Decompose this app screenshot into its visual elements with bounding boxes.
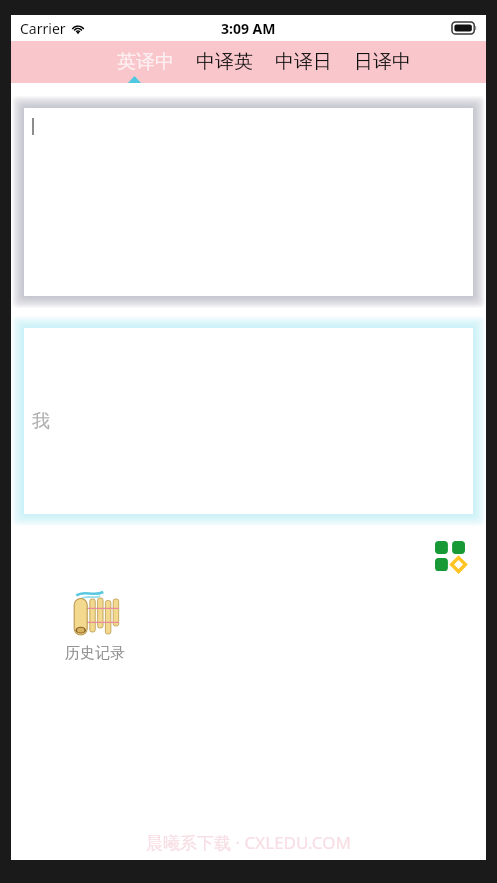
button[interactable]: 中译英 bbox=[185, 41, 264, 83]
staticText: 晨曦系下载 · CXLEDU.COM bbox=[146, 831, 351, 854]
staticText: 3:09 AM bbox=[221, 19, 276, 38]
staticText: 日译中 bbox=[354, 50, 411, 74]
staticText: 英译中 bbox=[117, 50, 174, 74]
staticText: 历史记录 bbox=[65, 644, 125, 663]
button[interactable]: 中译日 bbox=[264, 41, 343, 83]
staticText: 中译英 bbox=[196, 50, 253, 74]
staticText: 我 bbox=[32, 410, 50, 433]
button[interactable]: 英译中 bbox=[106, 41, 185, 83]
button[interactable]: 历史记录 bbox=[51, 590, 139, 663]
button[interactable]: 日译中 bbox=[343, 41, 422, 83]
staticText: 中译日 bbox=[275, 50, 332, 74]
staticText: Carrier bbox=[20, 19, 66, 38]
button[interactable]: Apps bbox=[432, 538, 468, 574]
